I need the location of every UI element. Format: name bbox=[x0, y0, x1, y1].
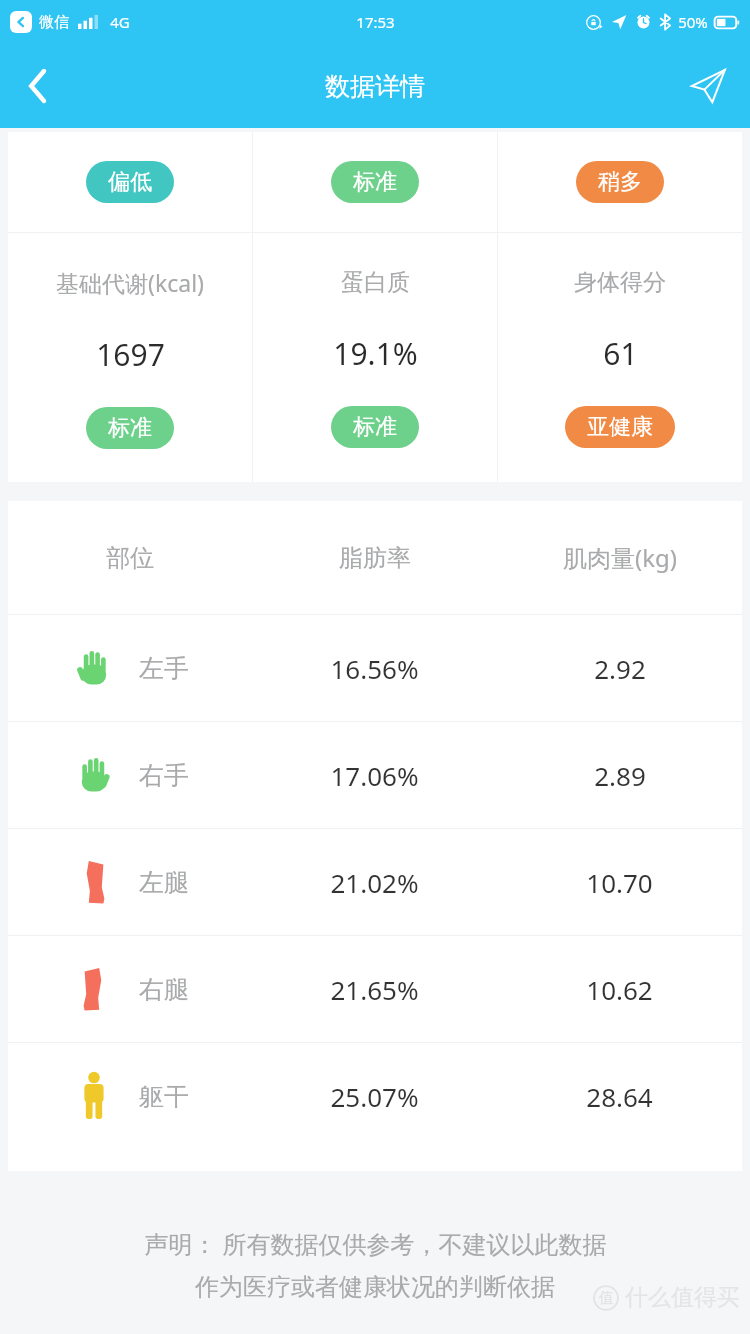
staticText: 4G bbox=[110, 12, 130, 32]
staticText: 偏低 bbox=[108, 168, 152, 196]
staticText: 2.89 bbox=[594, 758, 646, 793]
staticText: 数据详情 bbox=[325, 71, 425, 102]
staticText: 21.02% bbox=[330, 865, 419, 900]
staticText: 19.1% bbox=[333, 333, 418, 374]
button[interactable]: 蛋白质 bbox=[253, 233, 497, 482]
staticText: 身体得分 bbox=[574, 268, 666, 297]
staticText: 50% bbox=[678, 12, 708, 32]
staticText: 61 bbox=[603, 333, 638, 374]
staticText: 16.56% bbox=[330, 651, 419, 686]
staticText: 标准 bbox=[353, 168, 397, 196]
staticText: 标准 bbox=[353, 413, 397, 441]
staticText: 17:53 bbox=[356, 12, 395, 32]
button[interactable]: 躯干 bbox=[8, 1043, 742, 1149]
button[interactable]: 标准 bbox=[253, 132, 497, 232]
button[interactable]: 返回 bbox=[0, 44, 76, 128]
button[interactable]: 稍多 bbox=[498, 132, 742, 232]
staticText: 21.65% bbox=[330, 972, 419, 1007]
button[interactable]: 分享 bbox=[666, 44, 750, 128]
staticText: 蛋白质 bbox=[341, 268, 410, 297]
staticText: 左手 bbox=[139, 653, 189, 684]
staticText: 稍多 bbox=[598, 168, 642, 196]
staticText: 标准 bbox=[108, 414, 152, 442]
staticText: 微信 bbox=[39, 13, 69, 32]
staticText: 10.62 bbox=[586, 972, 653, 1007]
staticText: 1697 bbox=[96, 334, 165, 375]
staticText: 2.92 bbox=[594, 651, 646, 686]
staticText: 什么值得买 bbox=[625, 1283, 740, 1312]
staticText: 脂肪率 bbox=[339, 543, 411, 573]
staticText: 部位 bbox=[106, 543, 154, 573]
staticText: 25.07% bbox=[330, 1079, 419, 1114]
staticText: 17.06% bbox=[330, 758, 419, 793]
button[interactable]: 右腿 bbox=[8, 936, 742, 1042]
staticText: 右腿 bbox=[139, 974, 189, 1005]
staticText: 亚健康 bbox=[587, 413, 653, 441]
button[interactable]: 右手 bbox=[8, 722, 742, 828]
staticText: 声明： 所有数据仅供参考，不建议以此数据 bbox=[144, 1227, 607, 1260]
staticText: 值 bbox=[599, 1289, 614, 1308]
button[interactable]: 左手 bbox=[8, 615, 742, 721]
staticText: 左腿 bbox=[139, 867, 189, 898]
staticText: 肌肉量(kg) bbox=[563, 541, 677, 574]
staticText: 右手 bbox=[139, 760, 189, 791]
staticText: 基础代谢(kcal) bbox=[56, 267, 204, 298]
staticText: 28.64 bbox=[586, 1079, 653, 1114]
button[interactable]: 左腿 bbox=[8, 829, 742, 935]
staticText: 10.70 bbox=[586, 865, 653, 900]
button[interactable]: 基础代谢(kcal) bbox=[8, 233, 252, 482]
staticText: 躯干 bbox=[139, 1081, 189, 1112]
button[interactable]: 身体得分 bbox=[498, 233, 742, 482]
staticText: 作为医疗或者健康状况的判断依据 bbox=[195, 1272, 555, 1302]
button[interactable]: 偏低 bbox=[8, 132, 252, 232]
